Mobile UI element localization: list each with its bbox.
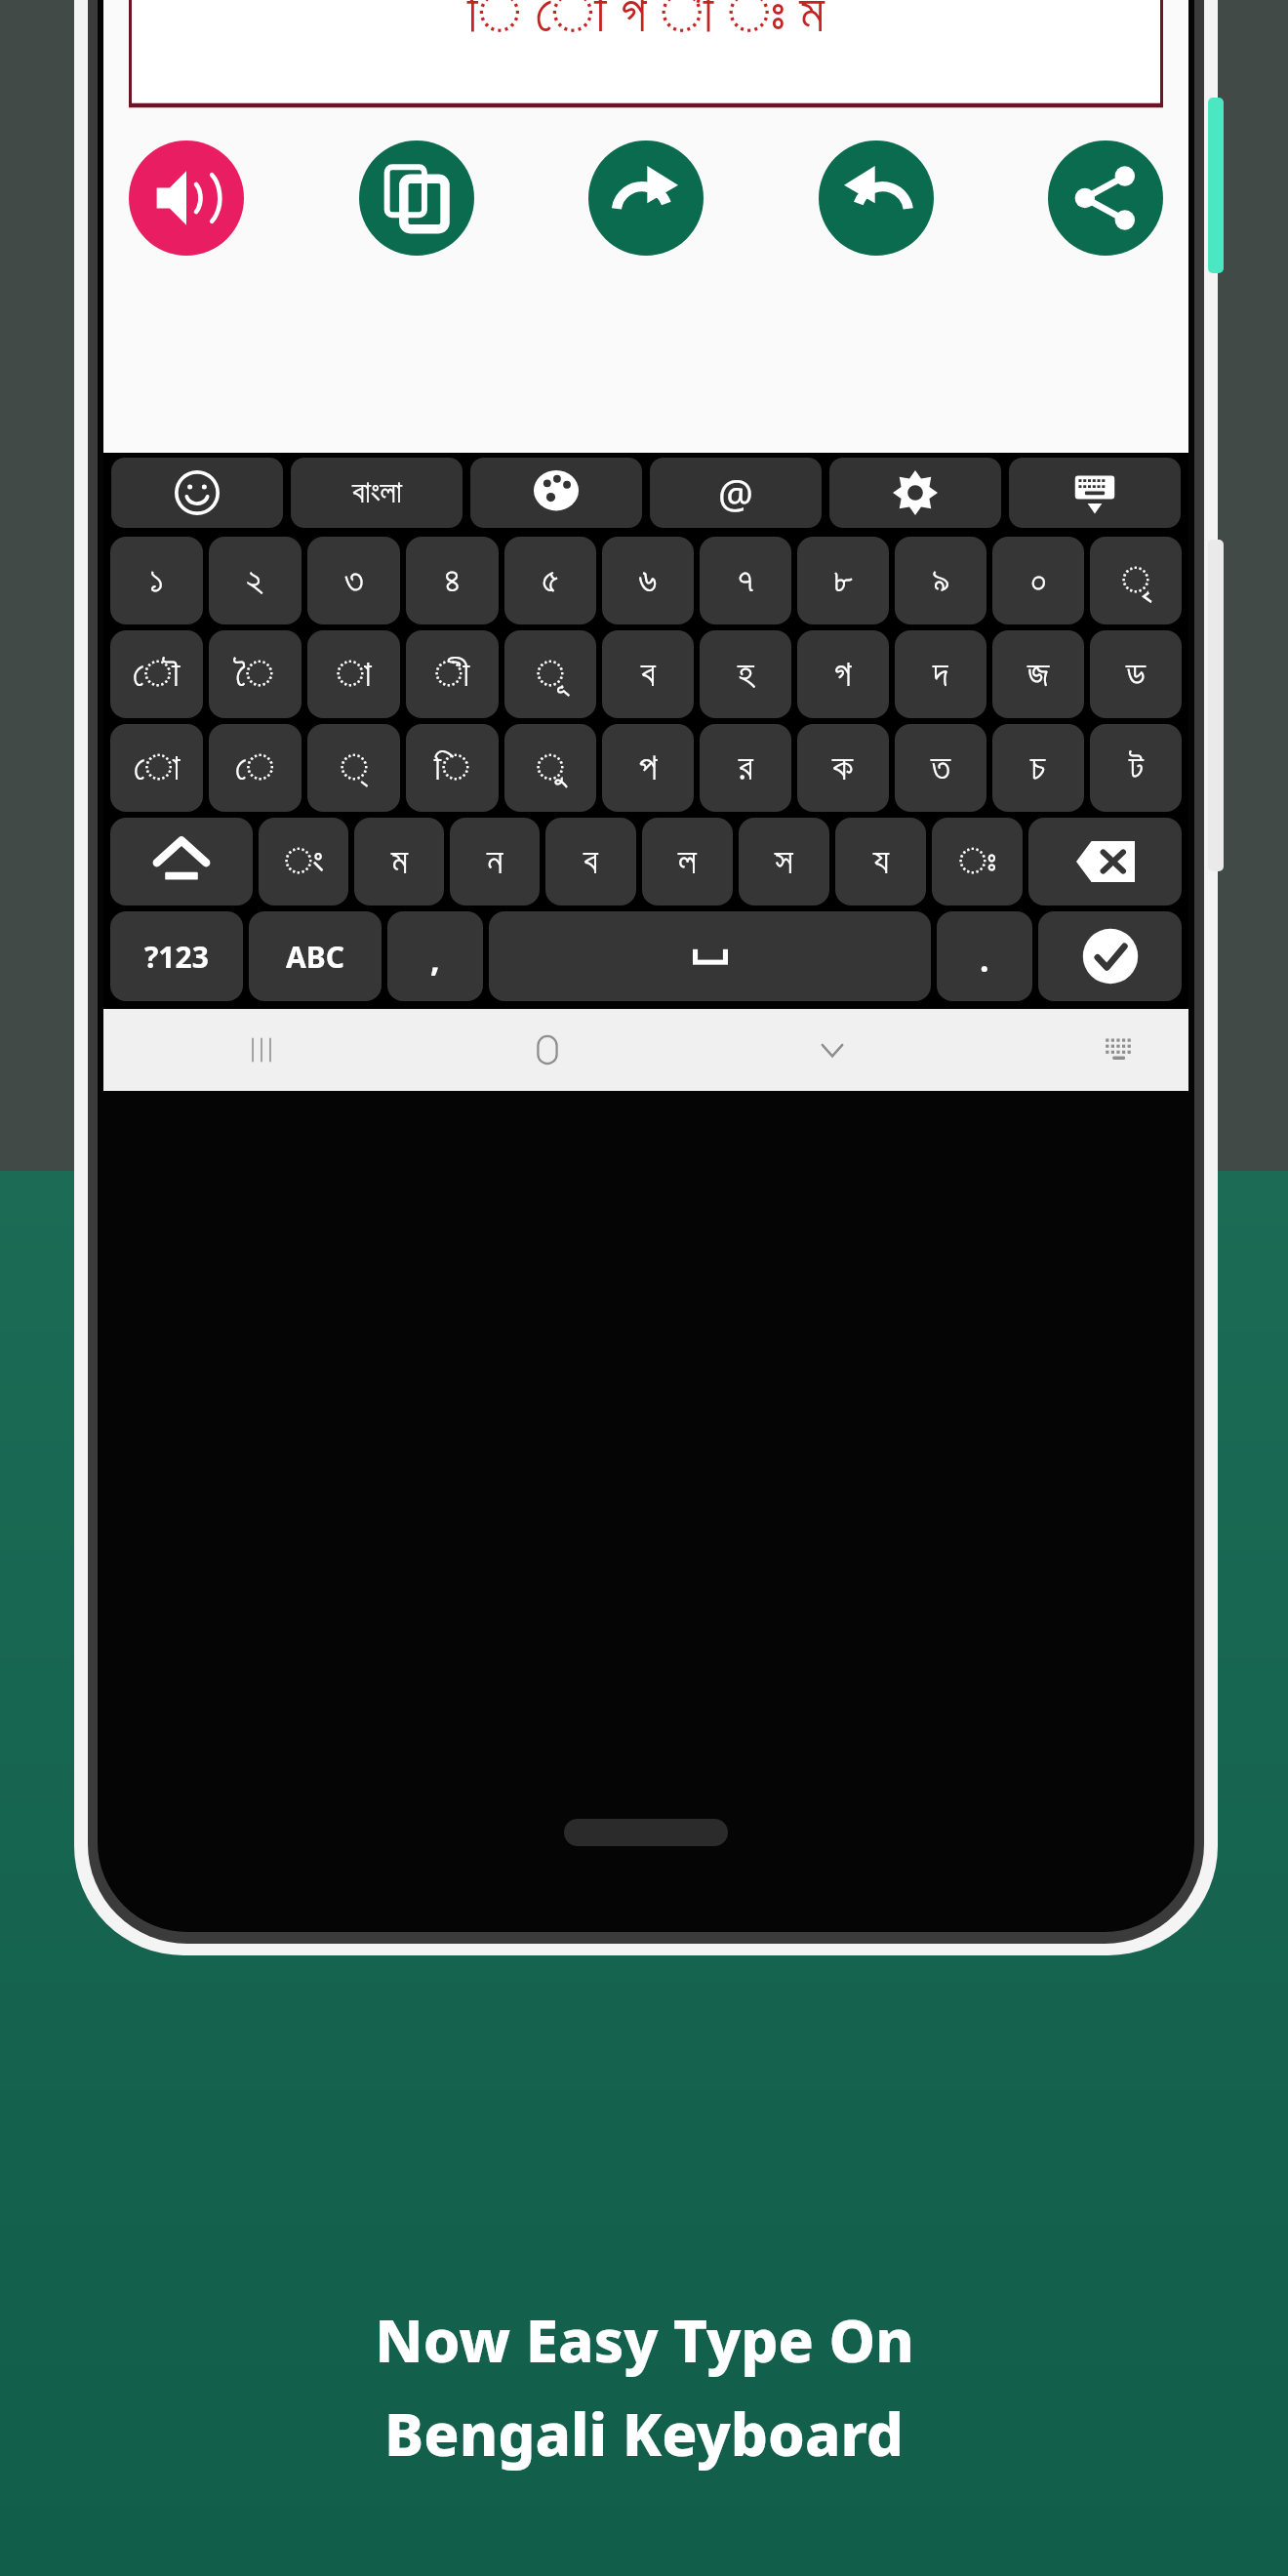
staticText: ৬	[638, 563, 658, 599]
staticText: জ	[1027, 657, 1050, 693]
button[interactable]: Emoji	[111, 458, 283, 528]
button[interactable]: ং	[259, 818, 348, 906]
button[interactable]: র	[700, 724, 791, 812]
staticText: .	[980, 937, 989, 982]
button[interactable]: Switch keyboard	[1087, 1019, 1149, 1081]
button[interactable]: Enter	[1038, 911, 1182, 1001]
button[interactable]: স	[739, 818, 829, 906]
staticText: ঃ	[958, 844, 997, 880]
button[interactable]: Undo	[819, 141, 934, 256]
staticText: ট	[1129, 750, 1144, 786]
button[interactable]: হ	[700, 630, 791, 718]
button[interactable]: ৌ	[110, 630, 203, 718]
button[interactable]: ?123	[110, 911, 243, 1001]
staticText: ?123	[144, 937, 209, 977]
button[interactable]: ০	[992, 537, 1084, 624]
button[interactable]: ল	[642, 818, 733, 906]
staticText: ৌ	[133, 657, 181, 693]
button[interactable]: ে	[209, 724, 302, 812]
button[interactable]: ৯	[895, 537, 986, 624]
button[interactable]: Shift	[110, 818, 253, 906]
staticText: র	[739, 750, 753, 786]
button[interactable]: ঃ	[932, 818, 1023, 906]
staticText: ল	[678, 844, 697, 880]
button[interactable]: Share	[1048, 141, 1163, 256]
button[interactable]: Copy	[359, 141, 474, 256]
staticText: ৭	[738, 563, 754, 599]
button[interactable]: Redo	[588, 141, 704, 256]
staticText: ং	[284, 844, 324, 880]
staticText: ,	[430, 937, 440, 982]
button[interactable]: ব	[602, 630, 694, 718]
button[interactable]: ব	[545, 818, 636, 906]
button[interactable]: জ	[992, 630, 1084, 718]
button[interactable]: ূ	[504, 630, 596, 718]
button[interactable]: ম	[354, 818, 444, 906]
staticText: দ	[933, 657, 948, 693]
button[interactable]: বাংলা	[291, 458, 463, 528]
button[interactable]: া	[307, 630, 400, 718]
button[interactable]: ি	[406, 724, 499, 812]
button[interactable]: য	[835, 818, 926, 906]
staticText: ে	[235, 750, 275, 786]
staticText: ABC	[286, 937, 344, 977]
button[interactable]: ৫	[504, 537, 596, 624]
staticText: ি	[434, 750, 470, 786]
button[interactable]: Settings	[829, 458, 1001, 528]
staticText: ৮	[833, 563, 854, 599]
staticText: গ	[834, 657, 852, 693]
staticText: হ	[738, 657, 754, 693]
button[interactable]: ী	[406, 630, 499, 718]
staticText: ্	[340, 750, 369, 786]
staticText: ২	[246, 563, 264, 599]
staticText: া	[336, 657, 372, 693]
button[interactable]: .	[937, 911, 1032, 1001]
button[interactable]: ২	[209, 537, 302, 624]
button[interactable]: ৭	[700, 537, 791, 624]
staticText: ু	[536, 750, 565, 786]
button[interactable]: Recents	[230, 1019, 293, 1081]
button[interactable]: ১	[110, 537, 203, 624]
button[interactable]: দ	[895, 630, 986, 718]
button[interactable]: ABC	[249, 911, 382, 1001]
staticText: ১	[149, 563, 164, 599]
button[interactable]: Space	[489, 911, 931, 1001]
staticText: ড	[1126, 657, 1146, 693]
button[interactable]: ৈ	[209, 630, 302, 718]
staticText: Bengali Keyboard	[384, 2394, 904, 2474]
button[interactable]: ট	[1090, 724, 1182, 812]
button[interactable]: ু	[504, 724, 596, 812]
button[interactable]: ড	[1090, 630, 1182, 718]
button[interactable]: Back	[801, 1019, 864, 1081]
button[interactable]: Home	[516, 1019, 579, 1081]
staticText: ক	[832, 750, 854, 786]
button[interactable]: চ	[992, 724, 1084, 812]
staticText: ৫	[542, 563, 559, 599]
staticText: ূ	[536, 657, 565, 693]
button[interactable]: Speak	[129, 141, 244, 256]
staticText: প	[639, 750, 658, 786]
button[interactable]: Backspace	[1028, 818, 1182, 906]
button[interactable]: ৬	[602, 537, 694, 624]
button[interactable]: গ	[797, 630, 889, 718]
button[interactable]: ৃ	[1090, 537, 1182, 624]
button[interactable]: Hide keyboard	[1009, 458, 1181, 528]
button[interactable]: প	[602, 724, 694, 812]
button[interactable]: ্	[307, 724, 400, 812]
button[interactable]: @	[650, 458, 822, 528]
button[interactable]: Theme	[470, 458, 642, 528]
button[interactable]: ক	[797, 724, 889, 812]
staticText: ম	[391, 844, 408, 880]
button[interactable]: ৪	[406, 537, 499, 624]
button[interactable]: ত	[895, 724, 986, 812]
staticText: ো	[134, 750, 181, 786]
button[interactable]: ৩	[307, 537, 400, 624]
staticText: ত	[931, 750, 951, 786]
button[interactable]: ন	[450, 818, 540, 906]
staticText: ৪	[444, 563, 461, 599]
button[interactable]: ,	[387, 911, 483, 1001]
button[interactable]: ো	[110, 724, 203, 812]
staticText: ি ৌ গ ী ঃ ম	[467, 0, 825, 47]
button[interactable]: ৮	[797, 537, 889, 624]
staticText: @	[718, 466, 753, 519]
